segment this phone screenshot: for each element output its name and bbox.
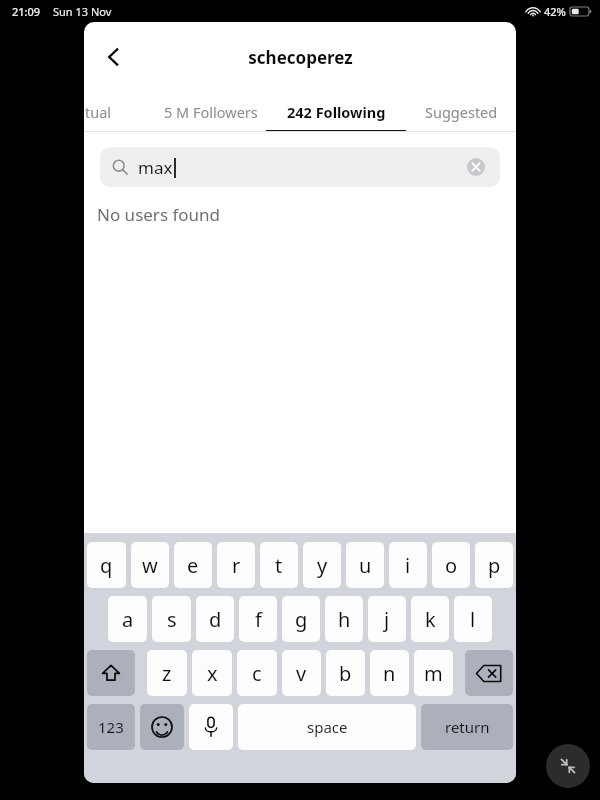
button[interactable]: v	[282, 650, 321, 696]
button[interactable]: e	[174, 542, 212, 588]
button[interactable]: Dictation	[189, 704, 233, 750]
button[interactable]: f	[239, 596, 277, 642]
staticText: schecoperez	[248, 46, 353, 69]
staticText: h	[338, 606, 351, 633]
button[interactable]: q	[87, 542, 126, 588]
button[interactable]: p	[475, 542, 513, 588]
button[interactable]: space	[238, 704, 416, 750]
button[interactable]: w	[131, 542, 169, 588]
staticText: g	[295, 606, 308, 633]
staticText: a	[122, 606, 134, 633]
staticText: p	[488, 552, 501, 579]
staticText: No users found	[97, 203, 221, 226]
button[interactable]: 123	[87, 704, 135, 750]
button[interactable]: return	[421, 704, 513, 750]
button[interactable]: Back	[92, 35, 136, 79]
staticText: w	[142, 552, 158, 579]
staticText: z	[162, 660, 172, 687]
button[interactable]: s	[152, 596, 191, 642]
button[interactable]: Backspace	[465, 650, 513, 696]
staticText: utual	[84, 102, 112, 122]
staticText: space	[307, 717, 348, 737]
staticText: s	[167, 606, 177, 633]
button[interactable]: m	[414, 650, 453, 696]
button[interactable]: z	[147, 650, 187, 696]
button[interactable]: t	[260, 542, 298, 588]
button[interactable]: k	[411, 596, 449, 642]
staticText: Suggested	[425, 102, 498, 122]
button[interactable]: n	[370, 650, 409, 696]
staticText: k	[425, 606, 436, 633]
staticText: q	[100, 552, 113, 579]
staticText: u	[359, 552, 372, 579]
staticText: m	[424, 660, 443, 687]
button[interactable]: Minimize window	[546, 744, 590, 788]
staticText: n	[383, 660, 396, 687]
button[interactable]: Shift	[87, 650, 135, 696]
button[interactable]: Suggested	[406, 92, 516, 132]
button[interactable]: o	[432, 542, 470, 588]
button[interactable]: g	[282, 596, 320, 642]
staticText: o	[445, 552, 458, 579]
button[interactable]: c	[237, 650, 277, 696]
staticText: t	[275, 552, 283, 579]
button[interactable]: i	[389, 542, 427, 588]
staticText: e	[187, 552, 199, 579]
staticText: return	[445, 717, 490, 737]
staticText: l	[470, 606, 476, 633]
button[interactable]: d	[196, 596, 234, 642]
staticText: 21:09	[12, 4, 41, 19]
staticText: j	[384, 606, 390, 633]
staticText: v	[296, 660, 307, 687]
staticText: i	[405, 552, 411, 579]
staticText: d	[209, 606, 222, 633]
button[interactable]: x	[192, 650, 232, 696]
staticText: 5 M Followers	[164, 102, 258, 122]
button[interactable]: 5 M Followers	[156, 92, 266, 132]
staticText: c	[252, 660, 262, 687]
staticText: f	[255, 606, 262, 633]
button[interactable]: utual	[84, 92, 156, 132]
staticText: b	[339, 660, 352, 687]
staticText: 42%	[544, 4, 566, 19]
button[interactable]: b	[326, 650, 365, 696]
button[interactable]: max	[100, 147, 500, 187]
staticText: max	[138, 156, 173, 179]
staticText: 123	[98, 717, 124, 737]
button[interactable]: l	[454, 596, 492, 642]
button[interactable]: r	[217, 542, 255, 588]
button[interactable]: Emoji	[140, 704, 184, 750]
staticText: Sun 13 Nov	[53, 4, 112, 19]
staticText: y	[317, 552, 328, 579]
button[interactable]: u	[346, 542, 384, 588]
button[interactable]: y	[303, 542, 341, 588]
button[interactable]: j	[368, 596, 406, 642]
button[interactable]: Clear text	[466, 157, 486, 177]
button[interactable]: 242 Following	[266, 92, 406, 132]
button[interactable]: a	[108, 596, 147, 642]
staticText: r	[232, 552, 241, 579]
button[interactable]: h	[325, 596, 363, 642]
staticText: x	[207, 660, 218, 687]
staticText: 242 Following	[287, 102, 386, 122]
